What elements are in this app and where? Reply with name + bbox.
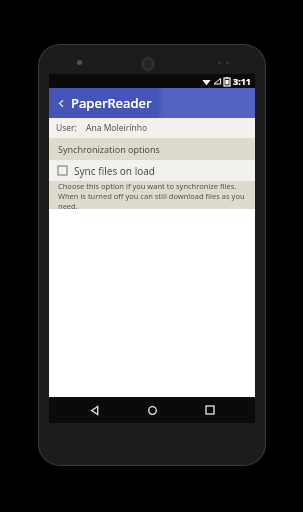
- staticText: PaperReader: [71, 94, 152, 112]
- button[interactable]: Home: [139, 397, 165, 423]
- button[interactable]: Navigate up: [55, 97, 67, 109]
- button[interactable]: User:: [49, 118, 255, 138]
- staticText: Choose this option if you want to synchr…: [58, 181, 246, 209]
- staticText: Synchronization options: [58, 143, 160, 155]
- button[interactable]: Navigate up: [49, 88, 255, 118]
- staticText: User:: [56, 122, 77, 134]
- button[interactable]: Sync files on load: [49, 160, 255, 181]
- staticText: 3:11: [233, 75, 251, 87]
- staticText: Ana Moleirinho: [86, 122, 148, 134]
- button[interactable]: Back: [81, 397, 107, 423]
- staticText: Sync files on load: [74, 164, 156, 178]
- button[interactable]: Recent apps: [197, 397, 223, 423]
